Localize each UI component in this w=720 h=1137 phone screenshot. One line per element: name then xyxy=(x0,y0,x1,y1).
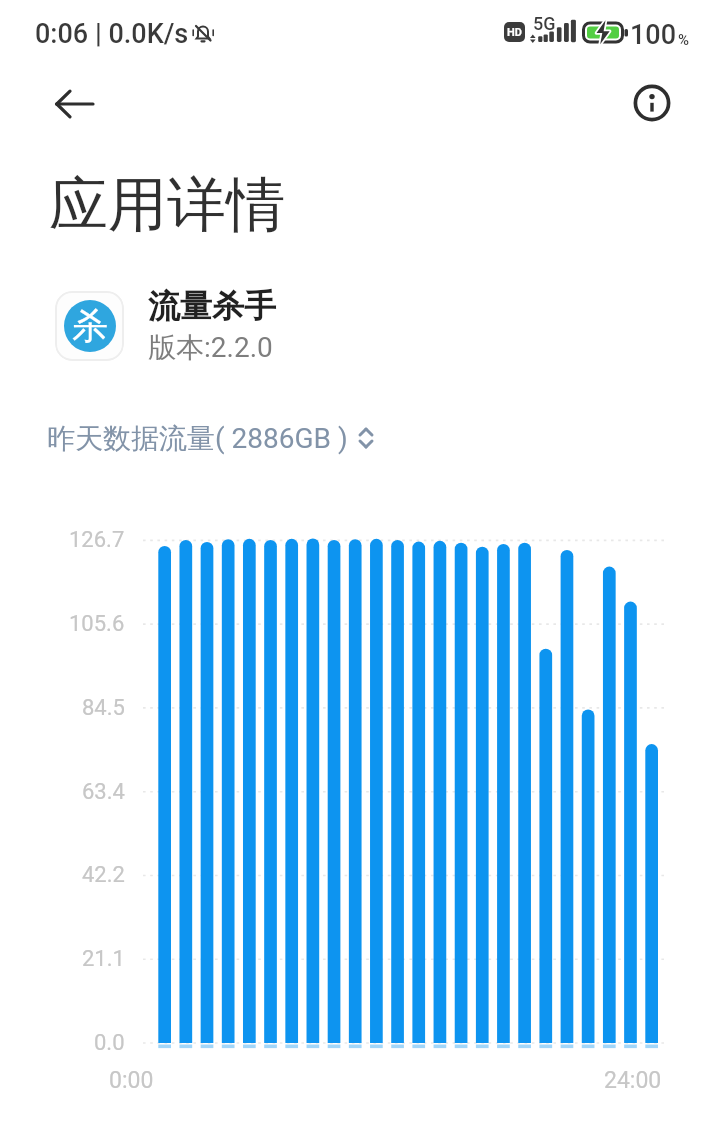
staticText: 100 xyxy=(630,19,677,51)
staticText: 126.7 xyxy=(69,527,125,553)
staticText: 105.6 xyxy=(69,611,125,637)
button[interactable]: 昨天数据流量( 2886GB ) xyxy=(47,416,376,460)
staticText: 流量杀手 xyxy=(148,286,276,326)
staticText: 42.2 xyxy=(82,862,125,888)
staticText: 5G xyxy=(533,13,556,34)
button[interactable] xyxy=(624,75,680,131)
staticText: HD xyxy=(507,26,522,39)
staticText: 24:00 xyxy=(604,1067,662,1094)
staticText: 应用详情 xyxy=(49,168,285,234)
staticText: 63.4 xyxy=(82,779,125,805)
button[interactable] xyxy=(46,76,102,132)
staticText: 版本:2.2.0 xyxy=(148,330,273,365)
staticText: % xyxy=(678,31,690,49)
staticText: 0:06 | 0.0K/s xyxy=(35,18,189,50)
staticText: 昨天数据流量( 2886GB ) xyxy=(47,421,348,456)
staticText: 0.0 xyxy=(94,1030,125,1056)
staticText: 杀 xyxy=(72,303,108,348)
staticText: 21.1 xyxy=(82,946,125,972)
staticText: 0:00 xyxy=(109,1067,154,1094)
staticText: 84.5 xyxy=(82,695,125,721)
button[interactable]: 杀 xyxy=(55,286,276,365)
